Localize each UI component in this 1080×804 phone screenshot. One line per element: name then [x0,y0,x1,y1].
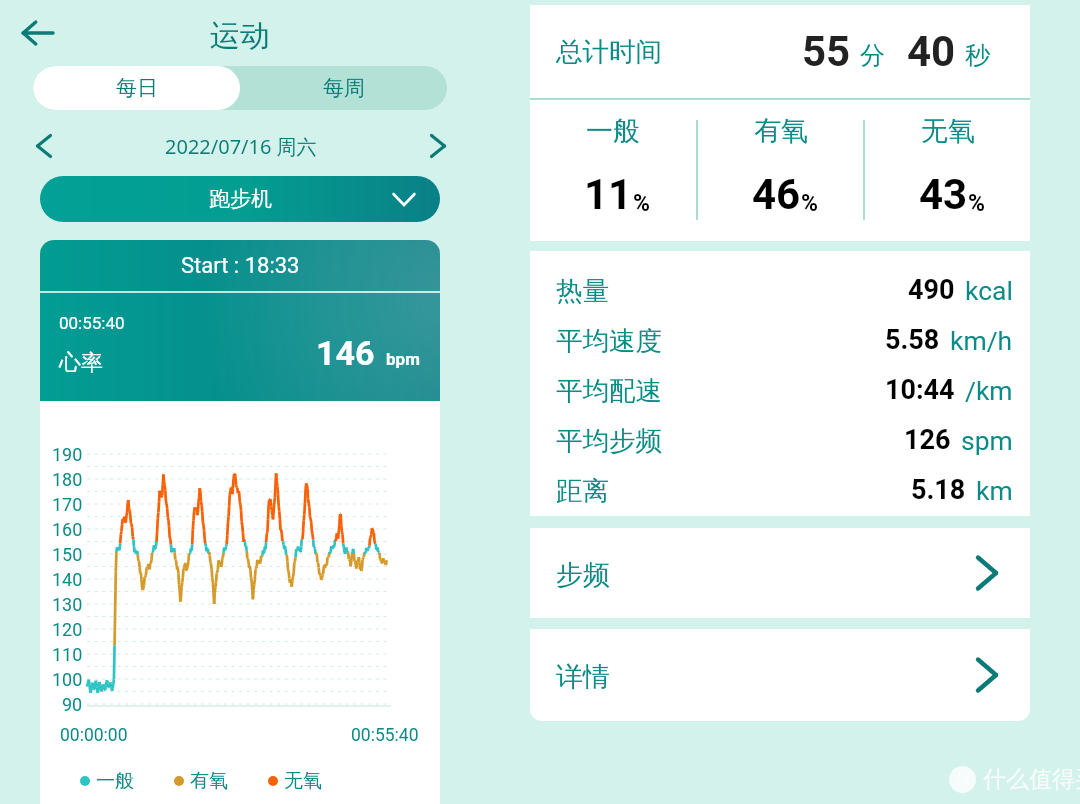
staticText: 平均步频 [556,424,662,457]
button[interactable]: 步频 [530,528,1030,618]
staticText: 11 [584,170,633,219]
staticText: 5.58 [885,324,940,356]
button[interactable]: Back [5,15,70,50]
staticText: 146 [316,333,375,373]
staticText: % [633,190,650,217]
staticText: km [976,475,1013,506]
staticText: 运动 [210,17,270,55]
staticText: 平均配速 [556,374,662,407]
staticText: 150 [52,544,83,565]
staticText: bpm [386,349,420,369]
staticText: 160 [52,519,83,540]
staticText: 一般 [96,769,134,793]
staticText: 跑步机 [209,186,272,212]
staticText: 00:55:40 [351,725,419,746]
staticText: 110 [52,644,83,665]
staticText: 心率 [59,349,103,377]
staticText: /km [965,375,1013,406]
staticText: 步频 [556,558,610,592]
button[interactable]: 详情 [530,629,1030,721]
staticText: 90 [62,694,83,715]
staticText: 40 [907,27,956,76]
staticText: 什么值得买 [983,765,1080,794]
staticText: 有氧 [190,769,228,793]
staticText: 平均速度 [556,324,662,357]
button[interactable]: 每周 [240,66,447,110]
button[interactable]: 每日 [33,66,240,110]
staticText: 每周 [323,75,365,101]
staticText: kcal [965,275,1013,306]
staticText: km/h [950,325,1013,356]
staticText: 无氧 [921,114,975,148]
staticText: 每日 [116,75,158,101]
staticText: 100 [52,669,83,690]
staticText: 126 [904,424,951,456]
staticText: % [801,190,818,217]
staticText: 秒 [965,40,990,71]
staticText: 热量 [556,274,609,307]
button[interactable]: Next day [420,128,456,164]
staticText: 00:55:40 [59,313,125,333]
staticText: Start : 18:33 [181,253,300,279]
staticText: % [968,190,985,217]
staticText: 有氧 [754,114,808,148]
staticText: 2022/07/16 周六 [165,133,317,160]
staticText: 详情 [556,660,610,694]
staticText: 一般 [586,114,640,148]
staticText: 46 [752,170,801,219]
staticText: 5.18 [911,474,966,506]
staticText: 43 [919,170,968,219]
staticText: 00:00:00 [60,725,128,746]
staticText: spm [961,425,1013,456]
staticText: 分 [860,40,885,71]
staticText: 130 [52,594,83,615]
staticText: 170 [52,494,83,515]
staticText: 10:44 [885,374,955,406]
button[interactable]: 跑步机 [40,176,440,222]
button[interactable]: Previous day [26,128,62,164]
staticText: 190 [52,444,83,465]
staticText: 距离 [556,474,609,507]
staticText: 120 [52,619,83,640]
staticText: 55 [802,27,851,76]
staticText: 总计时间 [556,35,662,68]
staticText: 180 [52,469,83,490]
staticText: 无氧 [284,769,322,793]
staticText: 140 [52,569,83,590]
staticText: 490 [908,274,955,306]
